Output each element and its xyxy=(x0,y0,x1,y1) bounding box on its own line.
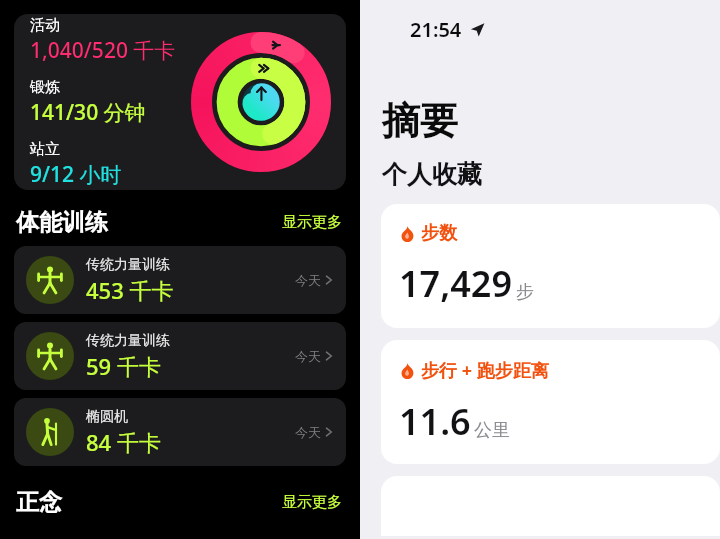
staticText: 公里 xyxy=(474,419,510,442)
button[interactable]: 显示更多 xyxy=(280,211,344,234)
button[interactable]: 步行 + 跑步距离 xyxy=(381,340,720,464)
staticText: 1,040/520 千卡 xyxy=(30,36,176,65)
staticText: 传统力量训练 xyxy=(86,256,170,274)
staticText: 453 千卡 xyxy=(86,275,174,305)
staticText: 活动 xyxy=(30,16,60,35)
staticText: 141/30 分钟 xyxy=(30,98,146,127)
button[interactable]: 传统力量训练 xyxy=(14,322,346,390)
staticText: 正念 xyxy=(16,488,62,517)
staticText: 体能训练 xyxy=(16,208,108,237)
staticText: 显示更多 xyxy=(282,213,342,232)
staticText: 9/12 小时 xyxy=(30,160,122,189)
staticText: 个人收藏 xyxy=(382,159,482,190)
staticText: 椭圆机 xyxy=(86,408,128,426)
staticText: 17,429 xyxy=(399,259,513,308)
staticText: 步 xyxy=(516,281,534,304)
staticText: 今天 xyxy=(295,424,321,440)
staticText: 84 千卡 xyxy=(86,427,161,457)
staticText: 21:54 xyxy=(410,16,462,43)
staticText: 摘要 xyxy=(382,97,458,145)
staticText: 传统力量训练 xyxy=(86,332,170,350)
button[interactable]: 传统力量训练 xyxy=(14,246,346,314)
button[interactable]: 步数 xyxy=(381,204,720,328)
staticText: 显示更多 xyxy=(282,493,342,512)
button[interactable]: 活动 xyxy=(14,14,346,190)
staticText: 今天 xyxy=(295,272,321,288)
button[interactable]: 椭圆机 xyxy=(14,398,346,466)
staticText: 站立 xyxy=(30,140,60,159)
button[interactable]: 显示更多 xyxy=(280,491,344,514)
staticText: 今天 xyxy=(295,348,321,364)
staticText: 11.6 xyxy=(399,397,471,446)
staticText: 59 千卡 xyxy=(86,351,161,381)
staticText: 步数 xyxy=(421,222,457,245)
staticText: 锻炼 xyxy=(30,78,60,97)
staticText: 步行 + 跑步距离 xyxy=(421,358,549,383)
